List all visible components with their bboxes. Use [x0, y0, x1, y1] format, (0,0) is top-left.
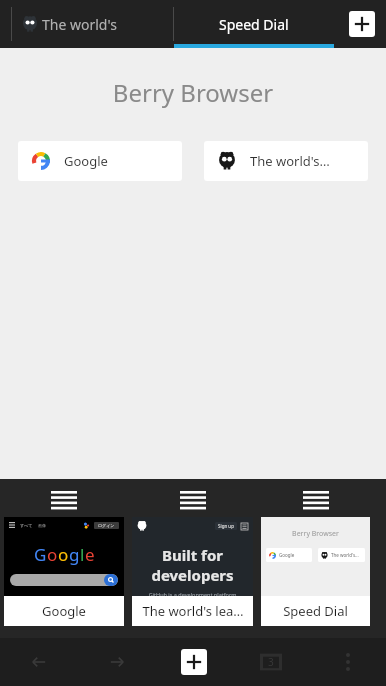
staticText: 画像 [38, 523, 46, 528]
staticText: The world's… [250, 152, 330, 170]
staticText: l [80, 543, 85, 566]
button[interactable]: The world's… [204, 141, 368, 181]
staticText: Google [42, 602, 86, 620]
staticText: 3 [268, 655, 274, 669]
staticText: ログイン [98, 523, 115, 528]
button[interactable]: New tab [155, 638, 232, 686]
staticText: The world's [42, 15, 117, 34]
button[interactable]: Berry Browser [261, 517, 370, 626]
staticText: o [47, 543, 58, 566]
staticText: developers [132, 565, 253, 585]
staticText: Google [279, 552, 295, 558]
staticText: Speed Dial [283, 602, 348, 620]
button[interactable]: Tabs, 3 open [232, 638, 309, 686]
staticText: すべて [20, 523, 33, 528]
button[interactable]: Close tab [303, 491, 329, 511]
staticText: Berry Browser [0, 76, 386, 109]
button[interactable]: New tab [349, 11, 375, 37]
staticText: Google [64, 152, 108, 170]
staticText: Berry Browser [261, 529, 370, 539]
staticText: G [34, 543, 47, 566]
staticText: Built for [132, 545, 253, 565]
button[interactable]: Close tab [180, 491, 206, 511]
staticText: The world's... [331, 552, 359, 558]
staticText: o [58, 543, 69, 566]
button[interactable]: Close tab [51, 491, 77, 511]
button[interactable]: すべて [4, 517, 124, 626]
button[interactable]: Sign up [132, 517, 253, 626]
button[interactable]: The world's [0, 0, 173, 48]
staticText: Speed Dial [219, 15, 289, 34]
staticText: The world's lea… [142, 602, 244, 620]
button[interactable]: Google [18, 141, 182, 181]
button[interactable]: Speed Dial [174, 0, 334, 48]
staticText: Sign up [218, 523, 234, 529]
staticText: e [85, 543, 95, 566]
staticText: GitHub is a development platform [132, 591, 253, 596]
staticText: g [69, 543, 80, 566]
